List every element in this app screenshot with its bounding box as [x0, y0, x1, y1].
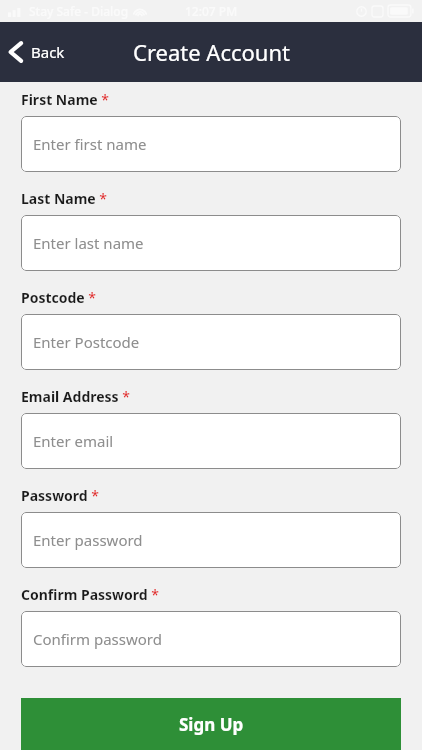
staticText: Enter password	[33, 530, 143, 550]
staticText: Confirm password	[33, 629, 162, 649]
button[interactable]: Enter Postcode	[21, 314, 401, 370]
staticText: Postcode *	[21, 288, 97, 307]
button[interactable]: Enter first name	[21, 116, 401, 172]
button[interactable]: Sign Up	[21, 698, 401, 750]
staticText: Enter email	[33, 431, 114, 451]
staticText: Sign Up	[179, 713, 244, 736]
button[interactable]: Enter last name	[21, 215, 401, 271]
button[interactable]: Confirm password	[21, 611, 401, 667]
staticText: Enter first name	[33, 134, 147, 154]
staticText: Confirm Password *	[21, 585, 160, 604]
staticText: Password *	[21, 486, 100, 505]
button[interactable]: Enter email	[21, 413, 401, 469]
staticText: Back	[31, 42, 65, 62]
button[interactable]: Enter password	[21, 512, 401, 568]
staticText: Create Account	[133, 37, 290, 67]
staticText: Enter Postcode	[33, 332, 140, 352]
staticText: Last Name *	[21, 189, 108, 208]
staticText: Email Address *	[21, 387, 131, 406]
staticText: Enter last name	[33, 233, 144, 253]
button[interactable]: Back	[0, 32, 77, 72]
staticText: First Name *	[21, 90, 110, 109]
